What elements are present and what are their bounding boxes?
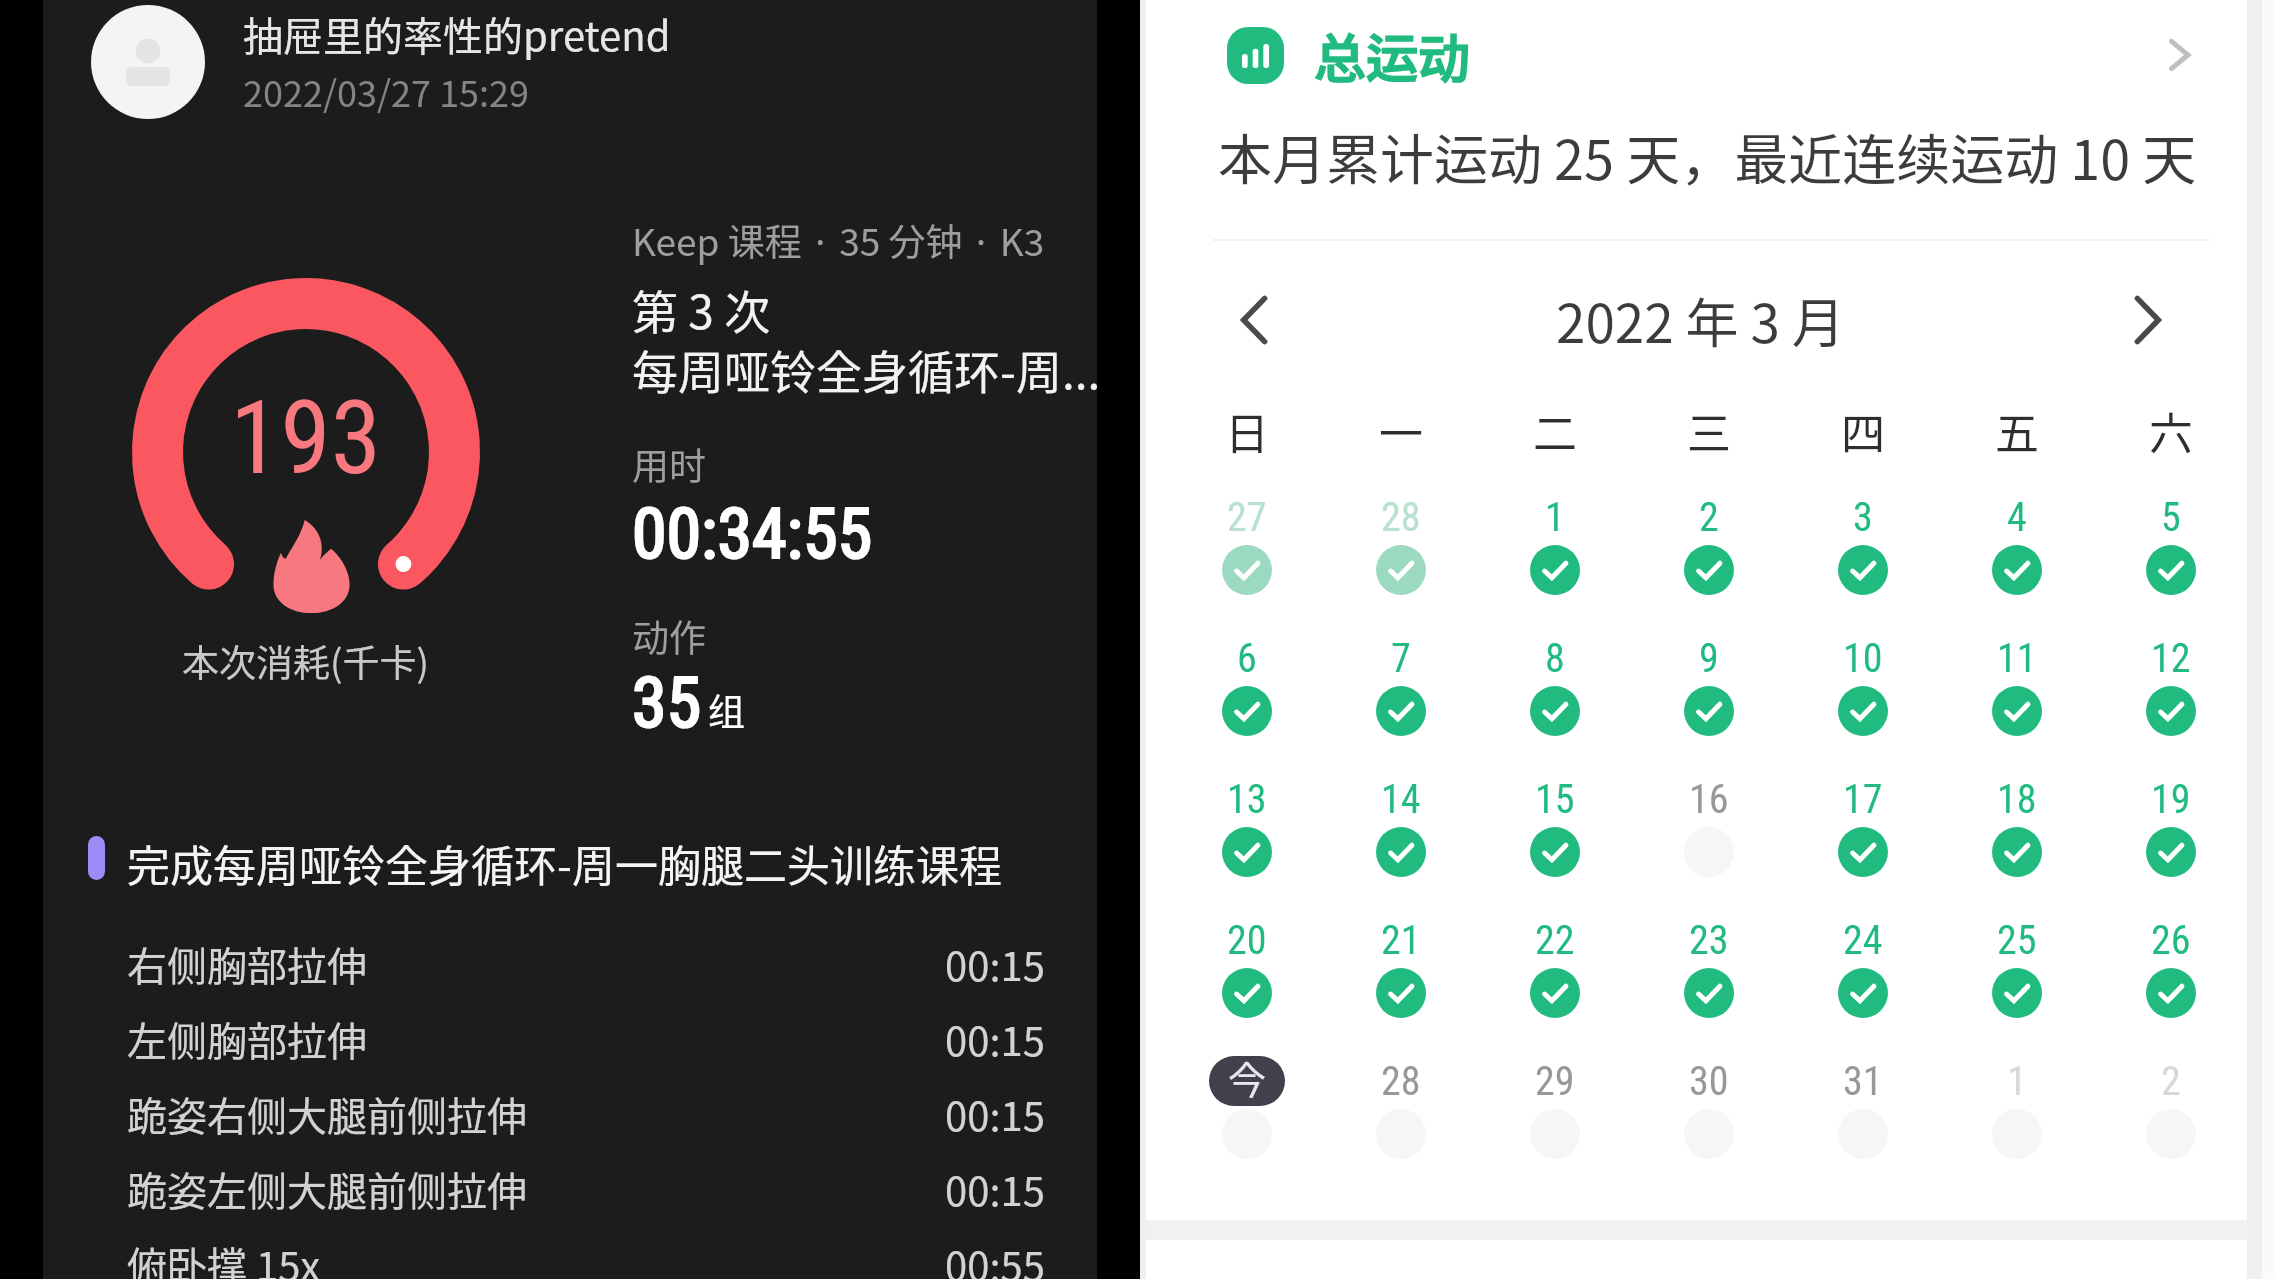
staticText: 25 [1997,917,2037,964]
staticText: 右侧胸部拉伸 [127,935,367,993]
button[interactable]: Completed [1992,686,2042,736]
button[interactable]: Previous month [1206,272,1302,368]
staticText: 30 [1689,1058,1729,1105]
staticText: 11 [1997,635,2037,682]
staticText: 8 [1545,635,1565,682]
staticText: 10 [1843,635,1883,682]
button[interactable]: Completed [1838,686,1888,736]
button[interactable]: Completed [1376,545,1426,595]
staticText: 21 [1381,917,1421,964]
button[interactable]: Completed [1376,827,1426,877]
button[interactable]: 跪姿右侧大腿前侧拉伸 [127,1078,1045,1150]
staticText: 2 [1699,494,1719,541]
staticText: 193 [230,378,382,498]
button[interactable]: 总运动 [1146,0,2247,110]
staticText: 6 [1237,635,1257,682]
staticText: 2 [2161,1058,2181,1105]
button[interactable]: Completed [1838,545,1888,595]
staticText: 四 [1841,399,1885,459]
staticText: 今 [1228,1050,1267,1102]
staticText: 28 [1381,494,1421,541]
staticText: 5 [2161,494,2181,541]
other: Calories burned [266,518,354,616]
staticText: 26 [2151,917,2191,964]
button[interactable]: Completed [1684,545,1734,595]
staticText: 2022 年 3 月 [1556,282,1845,359]
staticText: 15 [1535,776,1575,823]
staticText: 1 [1545,494,1565,541]
staticText: 动作 [632,609,706,663]
button[interactable]: Completed [1838,968,1888,1018]
button[interactable]: Completed [1992,827,2042,877]
staticText: 本月累计运动 25 天，最近连续运动 10 天 [1218,117,2197,195]
button[interactable]: Completed [2146,827,2196,877]
button[interactable]: Completed [1376,686,1426,736]
staticText: 22 [1535,917,1575,964]
button[interactable]: Completed [1222,686,1272,736]
other: More [2164,38,2194,72]
staticText: 14 [1381,776,1421,823]
staticText: 28 [1381,1058,1421,1105]
button[interactable]: Completed [1222,968,1272,1018]
staticText: 27 [1227,494,1267,541]
staticText: 00:15 [945,1085,1045,1143]
staticText: 日 [1225,399,1269,459]
staticText: 4 [2007,494,2027,541]
staticText: 跪姿右侧大腿前侧拉伸 [127,1085,527,1143]
staticText: 跪姿左侧大腿前侧拉伸 [127,1160,527,1218]
staticText: 完成每周哑铃全身循环-周一胸腿二头训练课程 [127,832,1002,894]
button[interactable]: Completed [1530,968,1580,1018]
button[interactable]: 右侧胸部拉伸 [127,928,1045,1000]
button[interactable]: 俯卧撑 15x [127,1228,1045,1279]
button[interactable]: Completed [1530,545,1580,595]
staticText: 3 [1853,494,1873,541]
staticText: 35 [632,662,702,744]
staticText: 一 [1379,399,1423,459]
staticText: 组 [708,683,745,737]
staticText: Keep 课程 · 35 分钟 · K3 [632,213,1045,267]
button[interactable]: Today [1209,1056,1285,1106]
button[interactable]: Completed [1684,686,1734,736]
staticText: 00:15 [945,1160,1045,1218]
button[interactable]: Completed [1684,968,1734,1018]
staticText: 00:15 [945,1010,1045,1068]
staticText: 00:34:55 [632,493,873,575]
button[interactable]: Completed [2146,686,2196,736]
staticText: 俯卧撑 15x [127,1235,321,1279]
staticText: 三 [1687,399,1731,459]
button[interactable]: Completed [2146,968,2196,1018]
button[interactable]: 跪姿左侧大腿前侧拉伸 [127,1153,1045,1225]
button[interactable]: Completed [1530,686,1580,736]
staticText: 18 [1997,776,2037,823]
staticText: 左侧胸部拉伸 [127,1010,367,1068]
staticText: 17 [1843,776,1883,823]
staticText: 20 [1227,917,1267,964]
staticText: 本次消耗(千卡) [182,634,430,686]
staticText: 7 [1391,635,1411,682]
staticText: 29 [1535,1058,1575,1105]
button[interactable]: Completed [1530,827,1580,877]
button[interactable]: Completed [1222,545,1272,595]
button[interactable]: Profile avatar [91,5,205,119]
staticText: 00:55 [945,1235,1045,1279]
staticText: 每周哑铃全身循环-周... [632,336,1101,403]
staticText: 用时 [632,437,706,491]
button[interactable]: Completed [1992,968,2042,1018]
staticText: 12 [2151,635,2191,682]
button[interactable]: Next month [2100,272,2196,368]
button[interactable]: Completed [1376,968,1426,1018]
staticText: 六 [2149,399,2193,459]
staticText: 2022/03/27 15:29 [243,65,530,117]
button[interactable]: 抽屉里的率性的pretend [243,0,763,122]
staticText: 00:15 [945,935,1045,993]
staticText: 总运动 [1314,18,1471,93]
button[interactable]: Completed [1838,827,1888,877]
staticText: 31 [1843,1058,1883,1105]
staticText: 第 3 次 [632,276,771,343]
button[interactable]: Completed [1992,545,2042,595]
button[interactable]: Completed [2146,545,2196,595]
staticText: 9 [1699,635,1719,682]
button[interactable]: 左侧胸部拉伸 [127,1003,1045,1075]
button[interactable]: Completed [1222,827,1272,877]
staticText: 二 [1533,399,1577,459]
